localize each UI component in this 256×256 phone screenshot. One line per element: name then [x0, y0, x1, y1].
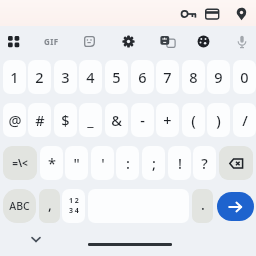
staticText: &	[111, 110, 122, 130]
button[interactable]	[88, 243, 172, 246]
button[interactable]: "	[65, 146, 88, 180]
staticText: =\<	[12, 156, 28, 170]
button[interactable]: 9	[207, 60, 230, 94]
staticText: *	[48, 153, 56, 173]
staticText: 1 2	[69, 196, 79, 206]
button[interactable]: !	[168, 146, 191, 180]
staticText: 2	[35, 67, 44, 87]
button[interactable]	[219, 146, 253, 180]
button[interactable]: 4	[79, 60, 102, 94]
button[interactable]: #	[28, 103, 51, 137]
button[interactable]: 5	[105, 60, 128, 94]
button[interactable]	[205, 8, 220, 20]
button[interactable]: ,	[39, 189, 60, 223]
button[interactable]: 7	[156, 60, 179, 94]
staticText: GIF	[44, 36, 59, 47]
button[interactable]	[180, 9, 197, 19]
button[interactable]: &	[105, 103, 128, 137]
staticText: 8	[189, 67, 198, 87]
button[interactable]	[197, 35, 210, 48]
staticText: 0	[240, 67, 249, 87]
staticText: /	[242, 110, 248, 130]
button[interactable]: GIF	[42, 35, 61, 48]
button[interactable]: =\<	[3, 146, 37, 180]
button[interactable]: 0	[233, 60, 256, 94]
button[interactable]: ;	[142, 146, 165, 180]
button[interactable]: '	[91, 146, 114, 180]
staticText: $	[61, 110, 70, 130]
button[interactable]: .	[192, 189, 213, 223]
staticText: )	[216, 110, 221, 130]
staticText: 5	[112, 67, 121, 87]
staticText: #	[35, 110, 45, 130]
staticText: 9	[214, 67, 223, 87]
button[interactable]	[29, 234, 43, 246]
staticText: @	[8, 110, 22, 130]
button[interactable]	[8, 36, 20, 48]
staticText: -	[140, 110, 145, 130]
button[interactable]: )	[207, 103, 230, 137]
staticText: "	[73, 153, 80, 173]
button[interactable]	[84, 36, 95, 47]
staticText: +	[163, 110, 172, 130]
button[interactable]: $	[54, 103, 77, 137]
button[interactable]: 1	[3, 60, 26, 94]
button[interactable]	[122, 35, 135, 48]
staticText: .	[201, 195, 205, 214]
staticText: 3 4	[69, 206, 79, 216]
staticText: ?	[201, 153, 208, 173]
staticText: ;	[152, 153, 156, 173]
staticText: :	[126, 153, 130, 173]
button[interactable]: ABC	[3, 189, 36, 223]
button[interactable]: _	[79, 103, 102, 137]
staticText: ,	[48, 195, 52, 214]
staticText: (	[191, 110, 196, 130]
staticText: 7	[163, 67, 172, 87]
staticText: _	[87, 110, 94, 130]
staticText: 1	[10, 67, 19, 87]
button[interactable]: /	[233, 103, 256, 137]
button[interactable]	[236, 7, 247, 21]
button[interactable]: (	[182, 103, 205, 137]
staticText: 3	[61, 67, 70, 87]
button[interactable]: ?	[193, 146, 216, 180]
button[interactable]: @	[3, 103, 26, 137]
button[interactable]: 1 2	[62, 189, 85, 223]
staticText: 4	[86, 67, 95, 87]
button[interactable]: +	[156, 103, 179, 137]
staticText: '	[101, 153, 105, 173]
button[interactable]: -	[131, 103, 154, 137]
staticText: 6	[138, 67, 147, 87]
button[interactable]	[217, 192, 254, 221]
button[interactable]: 2	[28, 60, 51, 94]
button[interactable]: 3	[54, 60, 77, 94]
button[interactable]: 6	[131, 60, 154, 94]
button[interactable]	[160, 35, 176, 49]
staticText: !	[178, 153, 182, 173]
button[interactable]: 8	[182, 60, 205, 94]
button[interactable]: *	[40, 146, 63, 180]
button[interactable]	[237, 35, 247, 49]
staticText: ABC	[9, 199, 30, 213]
button[interactable]: :	[116, 146, 139, 180]
